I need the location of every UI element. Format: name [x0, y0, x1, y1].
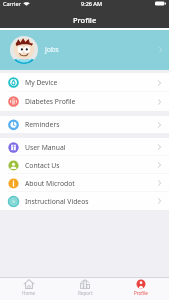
- staticText: Carrier: [3, 0, 21, 7]
- staticText: Reminders: [25, 120, 60, 129]
- staticText: Contact Us: [25, 161, 60, 170]
- button[interactable]: About Microdot: [0, 174, 169, 192]
- staticText: My Device: [25, 78, 58, 87]
- button[interactable]: Instructional Videos: [0, 192, 169, 210]
- button[interactable]: Contact Us: [0, 156, 169, 174]
- staticText: Profile: [73, 15, 97, 25]
- staticText: Report: [78, 290, 93, 296]
- staticText: Profile: [134, 290, 148, 296]
- staticText: 9:26 AM: [81, 0, 103, 7]
- staticText: Instructional Videos: [25, 197, 89, 206]
- button[interactable]: Report: [57, 278, 113, 300]
- button[interactable]: Home: [0, 278, 57, 300]
- button[interactable]: jobs: [0, 30, 169, 70]
- button[interactable]: Profile: [113, 278, 169, 300]
- button[interactable]: Reminders: [0, 116, 169, 133]
- staticText: jobs: [45, 45, 59, 55]
- button[interactable]: My Device: [0, 73, 169, 92]
- button[interactable]: User Manual: [0, 138, 169, 156]
- staticText: User Manual: [25, 143, 66, 152]
- staticText: Home: [22, 290, 36, 296]
- button[interactable]: Diabetes Profile: [0, 92, 169, 111]
- staticText: About Microdot: [25, 179, 75, 188]
- staticText: Diabetes Profile: [25, 97, 76, 106]
